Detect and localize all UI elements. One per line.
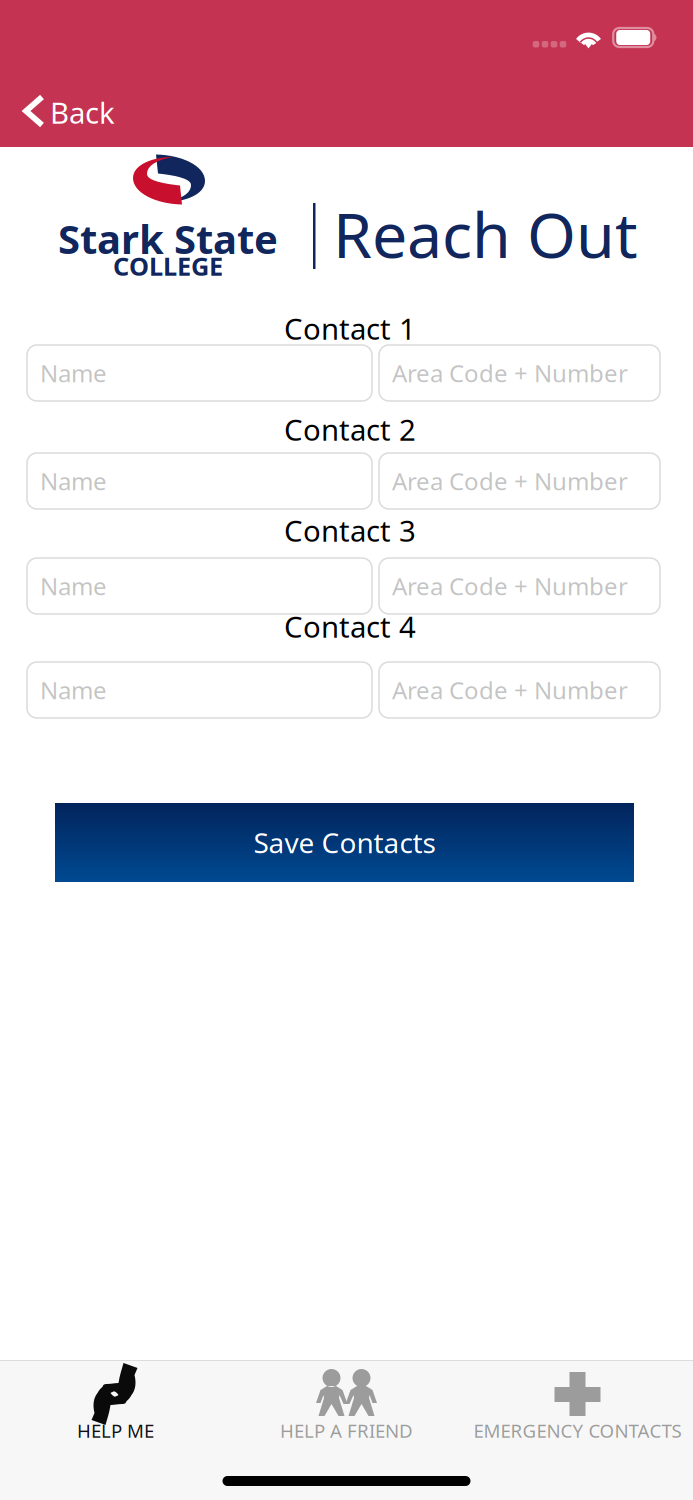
staticText: Name [40, 674, 107, 706]
button[interactable]: Save Contacts [55, 803, 634, 882]
button[interactable]: Name [27, 453, 372, 509]
staticText: Contact 2 [284, 410, 416, 449]
button[interactable]: HELP A FRIEND [231, 1361, 462, 1442]
staticText: Area Code + Number [392, 357, 628, 389]
button[interactable]: Name [27, 558, 372, 614]
staticText: Area Code + Number [392, 465, 628, 497]
staticText: Stark State [58, 212, 278, 265]
staticText: Contact 4 [284, 607, 416, 646]
staticText: Reach Out [333, 192, 638, 275]
button[interactable]: Back [0, 0, 138, 147]
staticText: HELP A FRIEND [280, 1418, 413, 1443]
staticText: COLLEGE [113, 249, 223, 283]
button[interactable]: Area Code + Number [379, 345, 660, 401]
staticText: Contact 3 [284, 511, 416, 550]
staticText: Contact 1 [284, 309, 416, 348]
staticText: EMERGENCY CONTACTS [473, 1418, 681, 1443]
staticText: Area Code + Number [392, 570, 628, 602]
button[interactable]: Area Code + Number [379, 453, 660, 509]
button[interactable]: Area Code + Number [379, 662, 660, 718]
button[interactable]: Name [27, 662, 372, 718]
staticText: Back [50, 93, 115, 132]
staticText: Name [40, 357, 107, 389]
staticText: Area Code + Number [392, 674, 628, 706]
staticText: HELP ME [77, 1418, 154, 1443]
staticText: Name [40, 465, 107, 497]
staticText: Save Contacts [253, 824, 435, 861]
button[interactable]: Name [27, 345, 372, 401]
button[interactable]: HELP ME [0, 1361, 231, 1442]
button[interactable]: EMERGENCY CONTACTS [462, 1361, 693, 1442]
button[interactable]: Area Code + Number [379, 558, 660, 614]
staticText: Name [40, 570, 107, 602]
